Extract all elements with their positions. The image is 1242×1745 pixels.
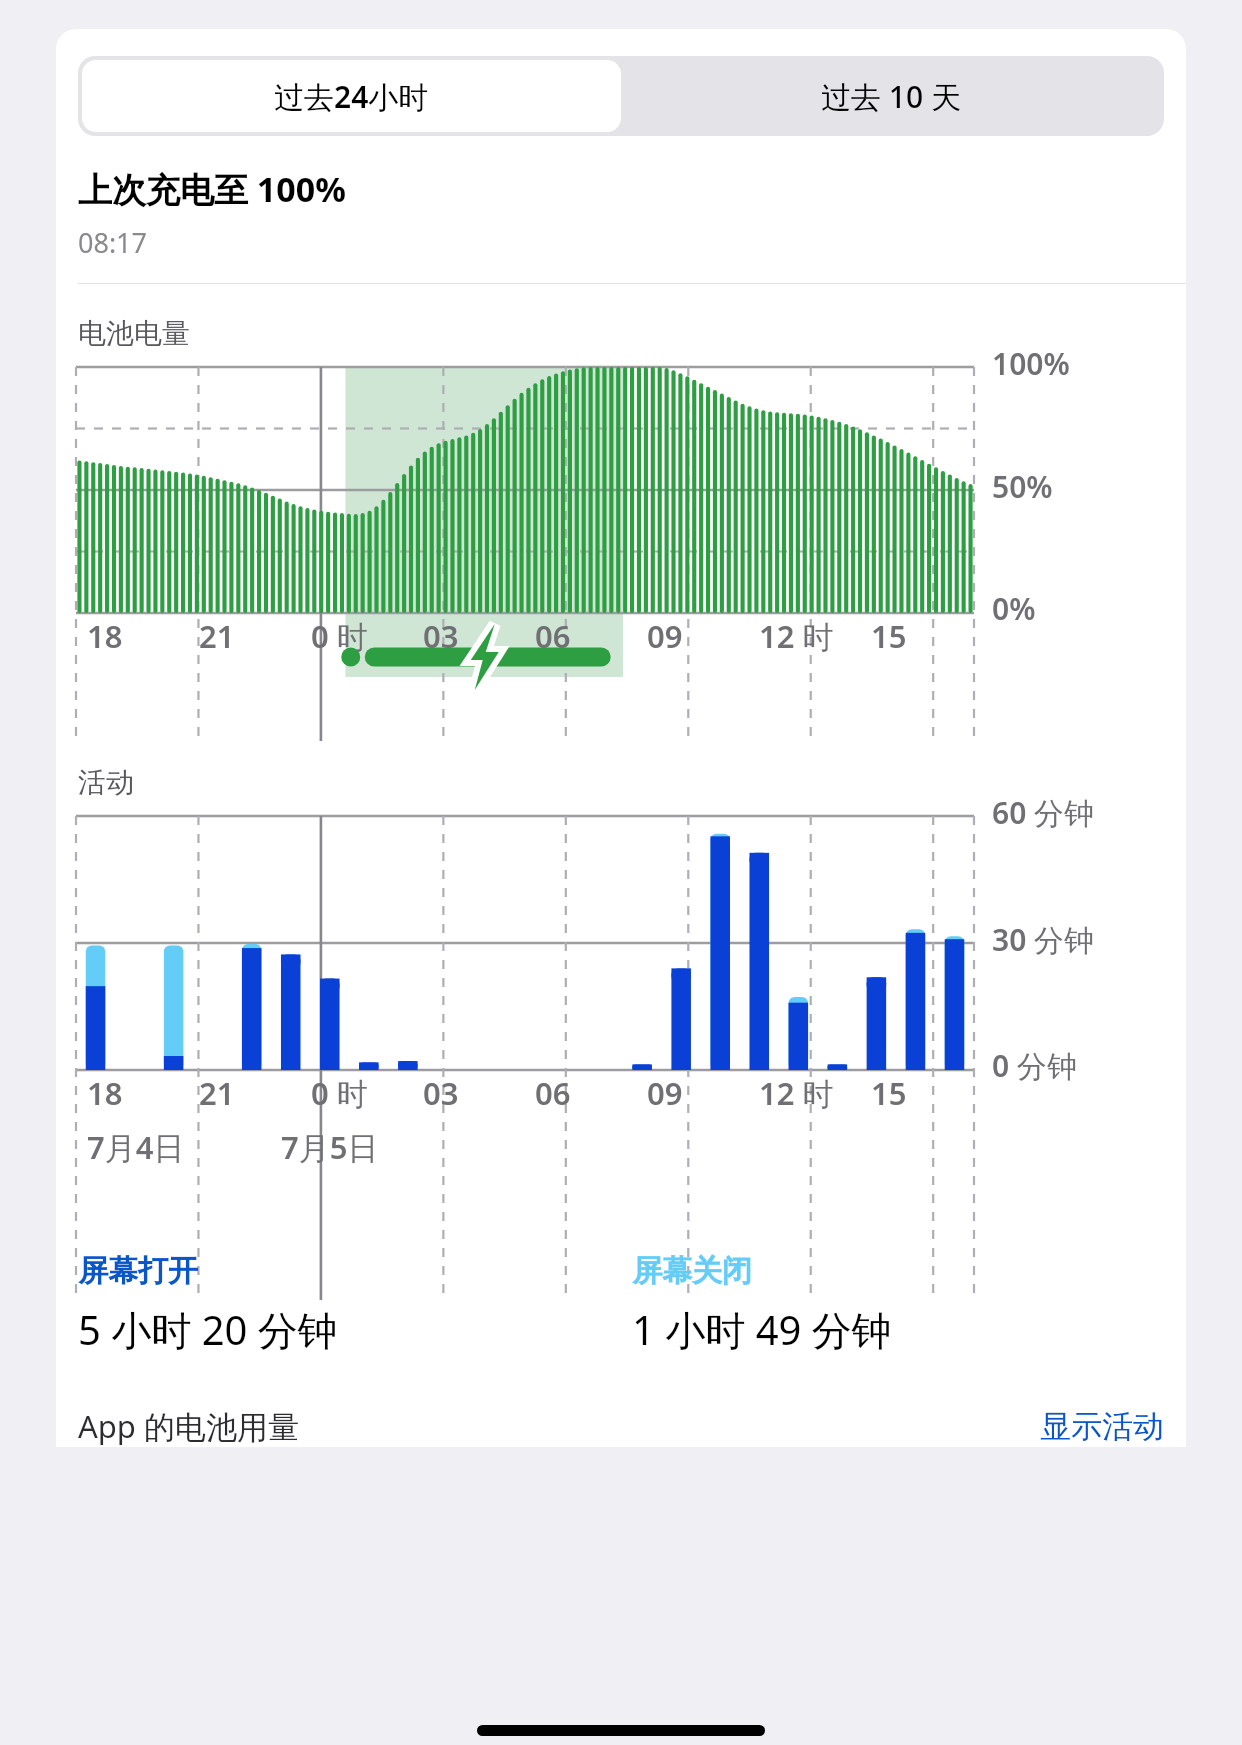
staticText: 15 [871,1072,907,1114]
button[interactable]: App 的电池用量 [78,1405,299,1447]
button[interactable]: 显示活动 [1040,1407,1164,1446]
staticText: 7月5日 [281,1126,379,1168]
staticText: 0% [992,588,1036,629]
staticText: 1 小时 49 分钟 [632,1302,892,1357]
staticText: 15 [871,615,907,657]
staticText: 屏幕打开 [78,1252,198,1290]
staticText: 12 时 [759,1072,834,1114]
staticText: 08:17 [78,224,148,261]
staticText: 100% [992,343,1070,384]
staticText: 06 [535,1072,571,1114]
staticText: 18 [87,1072,123,1114]
staticText: 0 分钟 [992,1045,1077,1086]
staticText: 电池电量 [78,316,190,351]
staticText: 5 小时 20 分钟 [78,1302,338,1357]
button[interactable]: 过去 10 天 [621,60,1160,132]
staticText: 7月4日 [87,1126,185,1168]
staticText: 30 分钟 [992,919,1095,960]
staticText: 03 [423,1072,459,1114]
staticText: 06 [535,615,571,657]
staticText: 过去 10 天 [821,76,961,117]
staticText: 60 分钟 [992,792,1095,833]
staticText: 03 [423,615,459,657]
staticText: 0 时 [311,615,368,657]
staticText: 12 时 [759,615,834,657]
staticText: 活动 [78,765,134,800]
staticText: 上次充电至 100% [78,166,346,212]
staticText: 21 [199,1072,235,1114]
staticText: 50% [992,466,1053,507]
staticText: 09 [647,615,683,657]
staticText: 0 时 [311,1072,368,1114]
staticText: 09 [647,1072,683,1114]
staticText: 过去24小时 [274,76,429,117]
button[interactable]: 过去24小时 [82,60,621,132]
staticText: 屏幕关闭 [632,1252,752,1290]
staticText: 18 [87,615,123,657]
staticText: 21 [199,615,235,657]
